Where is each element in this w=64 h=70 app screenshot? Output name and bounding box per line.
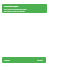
staticText: UNDO <box>37 59 44 62</box>
staticText: Tap here to see the details <box>4 10 25 12</box>
button[interactable]: Welcome back <box>2 4 47 13</box>
staticText: Welcome back <box>4 5 19 8</box>
staticText: Saved <box>4 59 10 62</box>
staticText: Your daily summary is ready <box>4 8 27 10</box>
button[interactable]: Saved <box>2 57 46 63</box>
staticText: note <box>3 64 8 67</box>
